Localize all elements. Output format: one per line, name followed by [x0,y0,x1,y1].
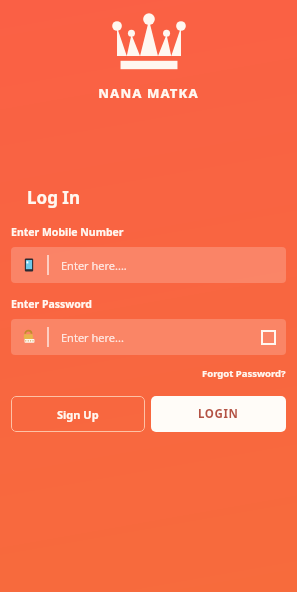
staticText: Enter here... [61,330,261,345]
button[interactable]: Sign Up [11,396,145,432]
button[interactable]: Enter here.... [11,247,286,283]
staticText: Log In [27,186,80,209]
button[interactable]: LOGIN [151,396,286,432]
button[interactable]: Show password [261,330,276,345]
button[interactable]: Forgot Password? [202,367,286,380]
staticText: Enter Password [11,297,92,311]
staticText: NANA MATKA [98,84,199,102]
staticText: Sign Up [57,407,99,422]
staticText: Enter Mobile Number [11,225,124,239]
button[interactable]: Enter here... [11,319,286,355]
staticText: LOGIN [198,406,239,422]
staticText: Enter here.... [61,258,276,273]
